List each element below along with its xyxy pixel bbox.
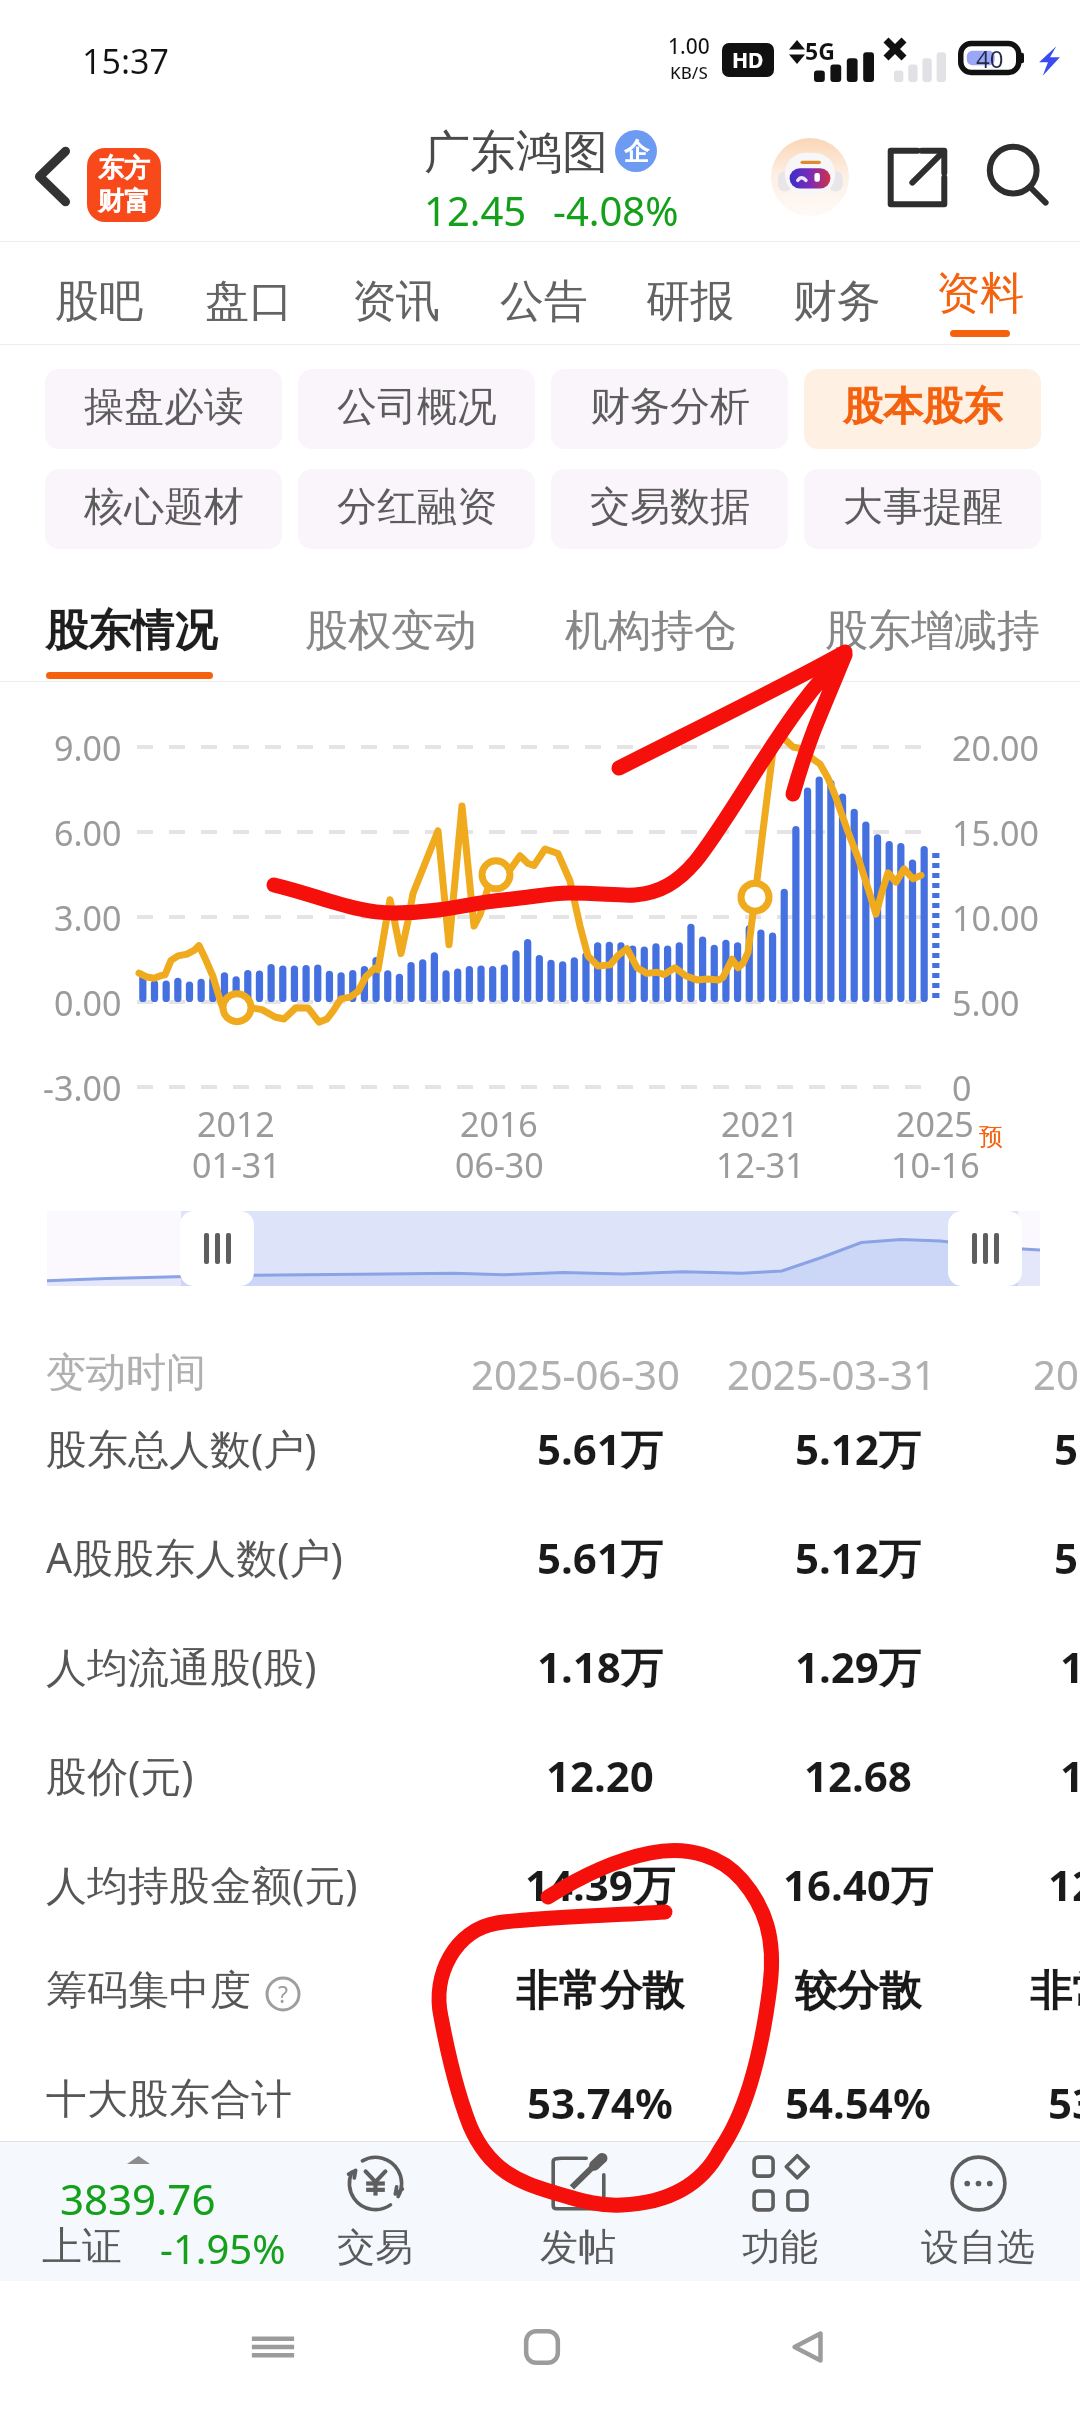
button[interactable]: 公告 [484,242,604,344]
button[interactable]: 资讯 [336,242,456,344]
staticText: KB/S [670,61,708,84]
button[interactable]: AI assistant [771,138,849,216]
staticText: -1.95% [160,2221,286,2275]
button[interactable]: A股股东人数(户) [0,1503,1080,1607]
staticText: 2012 [197,1101,275,1147]
button[interactable]: 资料 [920,242,1040,344]
button[interactable]: Back [748,2281,868,2412]
staticText: 十大股东合计 [46,2074,292,2126]
button[interactable]: 股本股东 [804,369,1041,449]
button[interactable]: 人均持股金额(元) [0,1830,1080,1934]
staticText: 设自选 [921,2223,1035,2271]
staticText: 股吧 [55,274,143,329]
staticText: 股东总人数(户) [46,1420,317,1476]
staticText: 财务 [793,274,881,329]
button[interactable]: 研报 [630,242,750,344]
staticText: 研报 [646,274,734,329]
staticText: 操盘必读 [84,381,244,431]
staticText: 16.40万 [783,1856,933,1913]
button[interactable]: Back [14,112,90,241]
staticText: 15.00 [952,810,1039,856]
staticText: 14.39万 [525,1856,675,1913]
button[interactable]: Home [482,2281,602,2412]
staticText: ? [278,1978,288,2009]
button[interactable]: 核心题材 [45,469,282,549]
button[interactable]: Range handle [948,1211,1022,1286]
staticText: 06-30 [455,1142,544,1188]
button[interactable]: 3839.76 [0,2141,300,2281]
button[interactable]: 交易 [275,2141,475,2281]
button[interactable]: 分红融资 [298,469,535,549]
staticText: 公司概况 [337,381,497,431]
staticText: 10-16 [891,1142,980,1188]
button[interactable]: Search [980,138,1058,216]
staticText: 广东鸿图 [424,124,608,182]
staticText: 较分散 [795,1965,921,2018]
staticText: 机构持仓 [565,604,737,658]
button[interactable]: 股东增减持 [812,550,1052,681]
button[interactable]: 发帖 [478,2141,678,2281]
staticText: 53.74% [527,2074,673,2131]
staticText: 12-31 [716,1142,805,1188]
staticText: 9.00 [54,725,122,771]
staticText: 0 [952,1065,972,1111]
staticText: 12.20 [546,1747,654,1804]
staticText: 人均持股金额(元) [46,1856,358,1912]
staticText: 5G [805,35,835,66]
staticText: 人均流通股(股) [46,1638,317,1694]
staticText: 非常 [1030,1965,1080,2018]
staticText: 筹码集中度 [46,1965,251,2017]
button[interactable]: 设自选 [878,2141,1078,2281]
staticText: 发帖 [540,2223,616,2271]
button[interactable]: 财务 [777,242,897,344]
staticText: 股权变动 [305,604,477,658]
staticText: 3839.76 [60,2170,216,2227]
button[interactable]: 操盘必读 [45,369,282,449]
staticText: 6.00 [54,810,122,856]
button[interactable]: 交易数据 [551,469,788,549]
staticText: A股股东人数(户) [46,1529,343,1585]
staticText: 2025-03-31 [727,1347,936,1401]
staticText: 5. [1054,1420,1080,1477]
button[interactable]: 功能 [680,2141,880,2281]
staticText: 盘口 [205,274,293,329]
button[interactable]: 盘口 [189,242,309,344]
button[interactable]: Range handle [180,1211,254,1286]
button[interactable]: 股东总人数(户) [0,1394,1080,1498]
staticText: 5. [1054,1529,1080,1586]
staticText: -3.00 [43,1065,122,1111]
button[interactable]: 大事提醒 [804,469,1041,549]
button[interactable]: 十大股东合计 [0,2048,1080,2152]
button[interactable]: 股权变动 [271,550,511,681]
staticText: HD [732,46,764,75]
staticText: 5.12万 [795,1529,921,1586]
staticText: 12.68 [804,1747,912,1804]
button[interactable]: 公司概况 [298,369,535,449]
button[interactable]: Recents [213,2281,333,2412]
staticText: 5.12万 [795,1420,921,1477]
button[interactable]: 股东情况 [11,550,251,681]
staticText: 20.00 [952,725,1039,771]
staticText: 01-31 [192,1142,281,1188]
staticText: 资料 [936,266,1024,321]
staticText: 2024- [1033,1347,1080,1401]
staticText: 53 [1048,2074,1080,2131]
button[interactable]: 财务分析 [551,369,788,449]
staticText: 1.18万 [537,1638,663,1695]
button[interactable]: Share [878,138,956,216]
button[interactable]: 筹码集中度 [0,1939,1080,2043]
button[interactable]: 机构持仓 [531,550,771,681]
staticText: 2016 [460,1101,538,1147]
staticText: 5.61万 [537,1529,663,1586]
staticText: 资讯 [352,274,440,329]
button[interactable]: 股价(元) [0,1721,1080,1825]
staticText: 40 [976,42,1004,75]
button[interactable]: 人均流通股(股) [0,1612,1080,1716]
staticText: 股东增减持 [825,604,1040,658]
staticText: 0.00 [54,980,122,1026]
staticText: 5.00 [952,980,1020,1026]
staticText: -4.08% [553,183,679,237]
staticText: 5.61万 [537,1420,663,1477]
button[interactable]: 股吧 [39,242,159,344]
button[interactable]: East Money home [87,148,161,222]
